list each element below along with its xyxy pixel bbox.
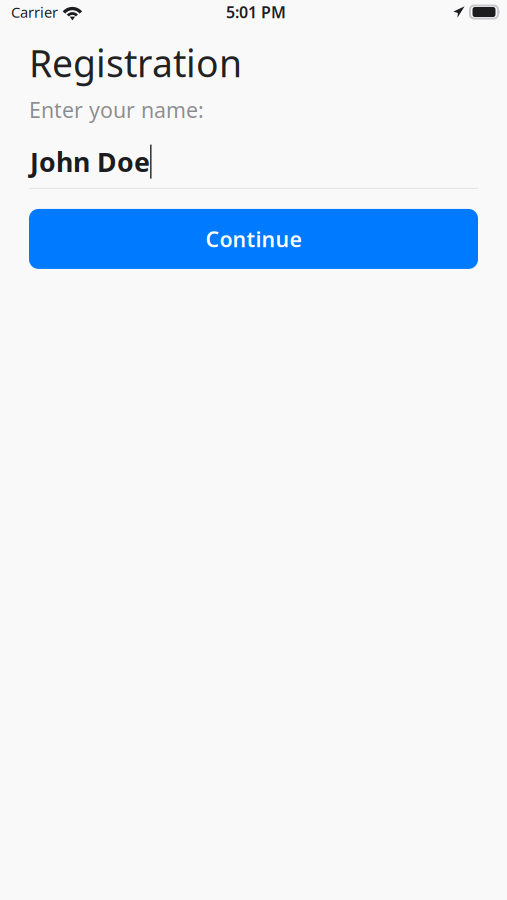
button[interactable]: Continue — [29, 209, 478, 269]
staticText: 5:01 PM — [226, 1, 286, 23]
staticText: Enter your name: — [29, 96, 204, 124]
staticText: Continue — [205, 225, 301, 253]
staticText: Registration — [29, 38, 242, 88]
staticText: John Doe — [30, 144, 150, 179]
staticText: Carrier — [11, 2, 58, 22]
